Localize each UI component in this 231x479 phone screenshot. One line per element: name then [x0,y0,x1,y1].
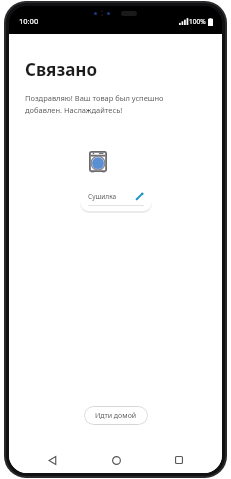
staticText: Поздравляю! Ваш товар был успешно добавл… [25,93,164,116]
button[interactable]: Идти домой [84,406,148,425]
staticText: Связано [25,58,97,81]
button[interactable]: Переименовать [134,191,144,201]
button[interactable]: Назад [32,447,72,473]
button[interactable]: Сушилка [80,144,152,213]
staticText: 100% [189,17,206,26]
staticText: 10:00 [19,16,39,26]
button[interactable]: Недавние [159,447,199,473]
staticText: Идти домой [95,411,137,421]
button[interactable]: Домой [96,447,136,473]
staticText: Сушилка [88,192,117,201]
